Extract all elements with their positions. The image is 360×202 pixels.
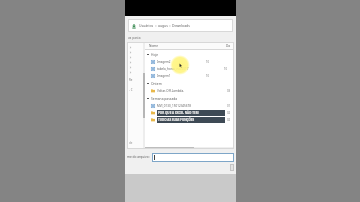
staticText: Nome	[149, 44, 159, 48]
staticText: Usuários	[139, 23, 154, 28]
staticText: Downloads	[172, 23, 190, 28]
button[interactable]	[129, 60, 143, 65]
staticText: Semana passada	[151, 96, 178, 100]
staticText: 01	[227, 104, 231, 108]
button[interactable]	[152, 153, 234, 162]
button[interactable]: Ontem	[145, 79, 234, 87]
button[interactable]: Hoje	[145, 50, 234, 58]
button[interactable]	[129, 70, 143, 75]
button[interactable]: Nome	[145, 42, 234, 49]
staticText: Imagem2	[157, 60, 171, 64]
staticText: TUDO AS SUAS FUNÇÕES	[158, 118, 195, 122]
button[interactable]: Imagem2	[145, 58, 234, 65]
staticText: va pasta	[128, 36, 141, 40]
staticText: Hoje	[151, 52, 159, 56]
button[interactable]	[129, 55, 143, 60]
staticText: Re	[129, 78, 133, 82]
staticText: MVI_0130_1501234567890 (1).MOV0681…	[157, 104, 192, 108]
staticText: me do arquivo:	[127, 155, 150, 159]
staticText: 02	[227, 118, 231, 122]
button[interactable]	[129, 45, 143, 50]
button[interactable]	[129, 50, 143, 55]
button[interactable]: Imagem1	[145, 72, 234, 79]
staticText: - C	[129, 88, 133, 92]
button[interactable]: Salvar	[230, 164, 234, 171]
button[interactable]: MVI_0130_1501234567890 (1).MOV0681…	[145, 102, 234, 109]
button[interactable]: Usuários	[128, 19, 233, 32]
staticText: de	[129, 141, 133, 145]
button[interactable]: TUDO AS SUAS FUNÇÕES	[145, 116, 234, 123]
staticText: Da	[226, 44, 231, 48]
staticText: augus	[158, 23, 168, 28]
staticText: 02	[227, 111, 231, 115]
staticText: Voltar-Off-Lambda-Excel-Aula-1	[157, 89, 192, 93]
staticText: 10	[206, 60, 210, 64]
other: Cursor highlight	[170, 55, 190, 75]
button[interactable]: Semana passada	[145, 94, 234, 102]
button[interactable]: tabela_horas_nov2017	[145, 65, 234, 72]
staticText: POR QUE A EXCEL NÃO TEM	[158, 111, 199, 115]
staticText: Imagem1	[157, 74, 171, 78]
staticText: 10	[224, 67, 228, 71]
button[interactable]: Voltar-Off-Lambda-Excel-Aula-1	[145, 87, 234, 94]
button[interactable]: POR QUE A EXCEL NÃO TEM	[145, 109, 234, 116]
staticText: Ontem	[151, 81, 162, 85]
staticText: 03	[227, 89, 231, 93]
staticText: tabela_horas_nov2017	[157, 67, 189, 71]
button[interactable]	[129, 65, 143, 70]
staticText: 10	[206, 74, 210, 78]
